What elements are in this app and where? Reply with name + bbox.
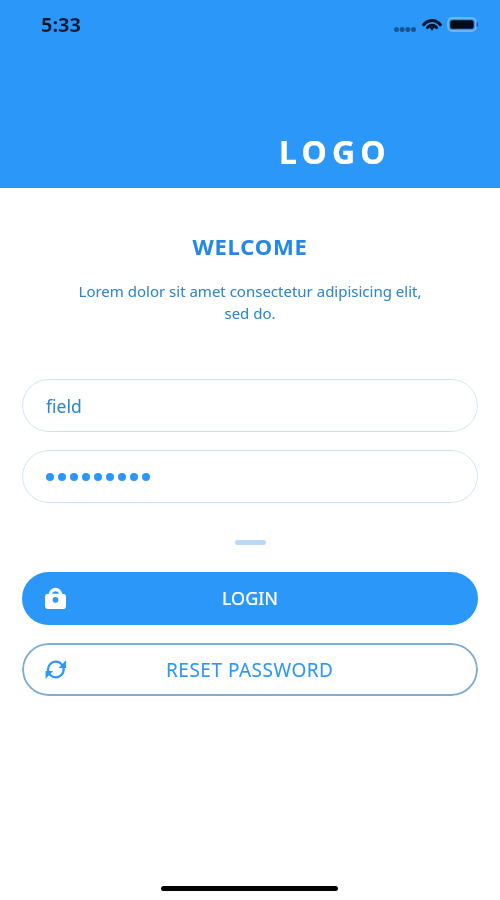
staticText: field [46, 394, 82, 418]
other: Reset password [45, 659, 68, 680]
button[interactable]: field [22, 379, 478, 432]
staticText: Lorem dolor sit amet consectetur adipisi… [72, 281, 428, 324]
staticText: 5:33 [41, 11, 81, 38]
button[interactable] [22, 450, 478, 503]
staticText: LOGO [279, 130, 391, 174]
button[interactable]: RESET PASSWORD [22, 643, 478, 696]
button[interactable]: LOGIN [22, 572, 478, 625]
staticText: WELCOME [0, 231, 500, 261]
staticText: LOGIN [222, 586, 279, 611]
staticText: RESET PASSWORD [166, 657, 334, 683]
other: Lock [45, 589, 66, 609]
